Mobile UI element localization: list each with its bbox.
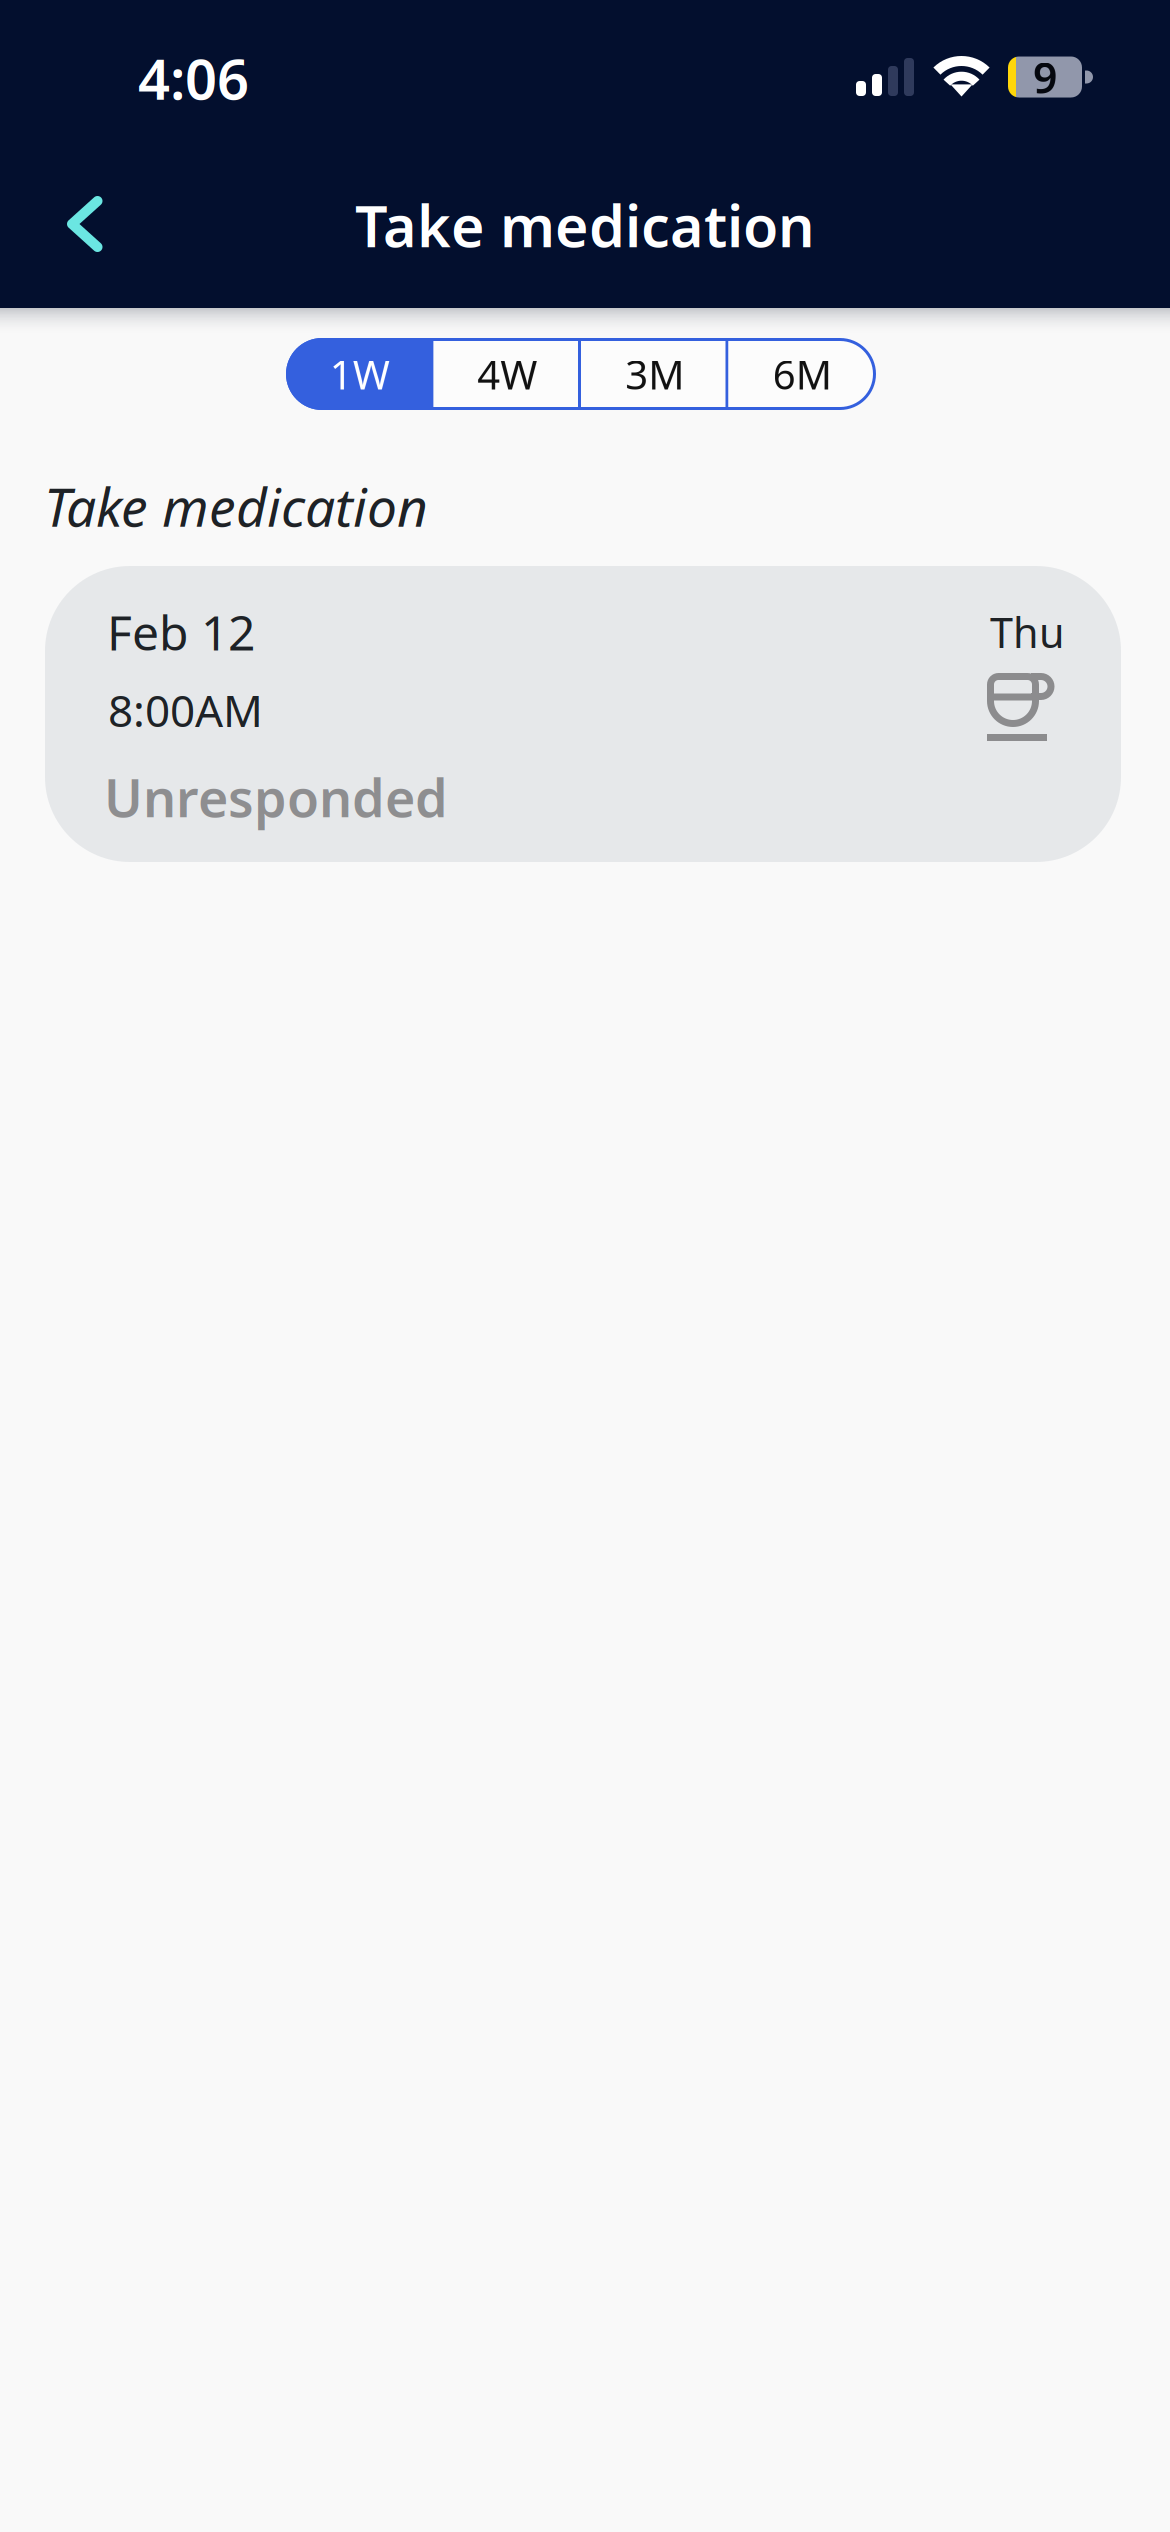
staticText: 6M [773,347,832,400]
staticText: 4W [477,347,537,400]
staticText: 4:06 [138,41,249,115]
button[interactable]: Back [21,160,149,288]
button[interactable]: 3M [581,338,728,410]
staticText: Thu [990,605,1065,659]
button[interactable]: Feb 12 [45,566,1121,862]
staticText: 3M [625,347,684,400]
staticText: 9 [1033,49,1057,105]
button[interactable]: 1W [286,338,433,410]
staticText: Take medication [355,187,815,263]
button[interactable]: 6M [728,338,876,410]
staticText: Feb 12 [107,600,255,664]
button[interactable]: 4W [433,338,581,410]
staticText: 8:00AM [108,681,263,739]
staticText: Unresponded [104,762,448,832]
staticText: 1W [330,347,390,400]
staticText: Take medication [44,471,428,541]
